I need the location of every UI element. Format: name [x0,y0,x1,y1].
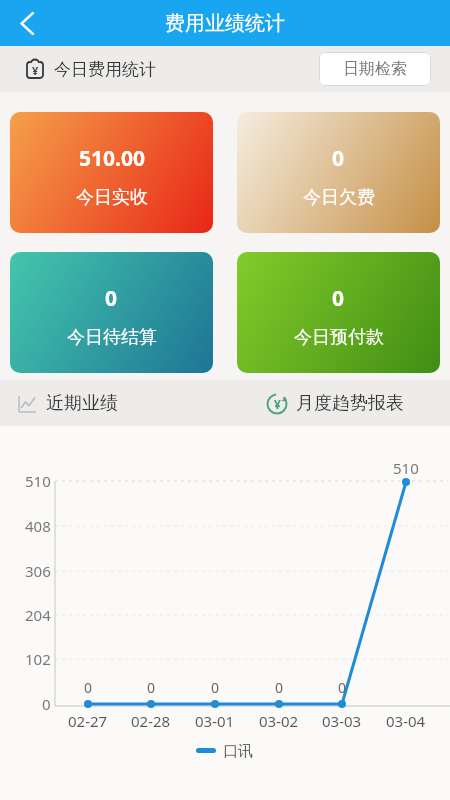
button[interactable]: ¥ [266,392,404,415]
staticText: 0 [275,678,284,697]
staticText: 0 [84,678,93,697]
staticText: 510.00 [79,144,145,173]
staticText: ¥ [274,396,281,412]
staticText: 102 [25,649,51,669]
staticText: 0 [338,678,347,697]
staticText: 03-02 [259,711,299,731]
staticText: 费用业绩统计 [165,11,285,36]
staticText: 510 [393,458,419,478]
button[interactable]: 0 [237,252,440,373]
button[interactable]: 510.00 [10,112,213,233]
staticText: 03-04 [386,711,426,731]
staticText: 今日待结算 [67,326,157,349]
staticText: 0 [332,284,345,313]
staticText: 月度趋势报表 [296,392,404,415]
staticText: 今日费用统计 [54,59,156,80]
staticText: 日期检索 [343,59,407,79]
staticText: 0 [332,144,345,173]
staticText: 0 [105,284,118,313]
staticText: 近期业绩 [46,392,118,415]
staticText: 02-28 [131,711,171,731]
staticText: 今日实收 [76,186,148,209]
staticText: 口讯 [223,742,253,761]
staticText: 0 [211,678,220,697]
staticText: 408 [25,516,51,536]
staticText: 02-27 [68,711,108,731]
button[interactable] [12,9,40,37]
staticText: 204 [25,605,51,625]
staticText: ¥ [32,63,39,78]
staticText: 306 [25,561,51,581]
button[interactable]: 0 [237,112,440,233]
button[interactable]: 日期检索 [319,52,431,86]
staticText: 0 [42,694,51,714]
staticText: 03-01 [195,711,235,731]
staticText: 510 [25,471,51,491]
button[interactable]: 近期业绩 [16,392,118,415]
staticText: 03-03 [322,711,362,731]
staticText: 今日欠费 [303,186,375,209]
staticText: 今日预付款 [294,326,384,349]
button[interactable]: 0 [10,252,213,373]
staticText: 0 [147,678,156,697]
